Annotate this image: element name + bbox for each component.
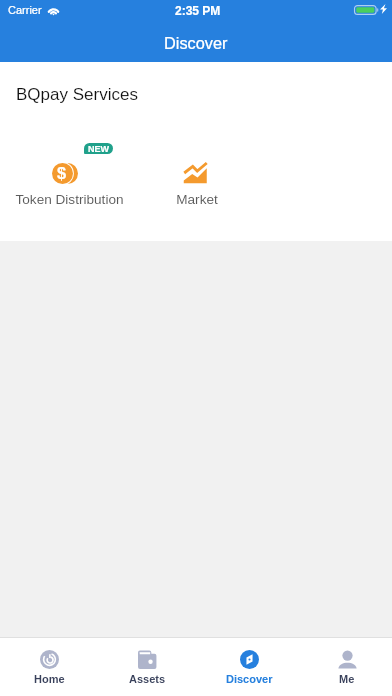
staticText: Discover bbox=[226, 673, 273, 685]
button[interactable]: Me bbox=[302, 638, 392, 696]
staticText: Discover bbox=[164, 34, 228, 52]
staticText: Token Distribution bbox=[15, 192, 124, 207]
staticText: 2:35 PM bbox=[175, 4, 221, 17]
button[interactable]: Discover bbox=[196, 638, 302, 696]
button[interactable]: Home bbox=[0, 638, 98, 696]
button[interactable]: $ bbox=[5, 162, 133, 207]
staticText: Carrier bbox=[8, 4, 42, 16]
staticText: BQpay Services bbox=[16, 85, 138, 104]
button[interactable]: Assets bbox=[98, 638, 196, 696]
staticText: Home bbox=[34, 673, 65, 685]
button[interactable]: Market bbox=[133, 162, 261, 207]
staticText: Market bbox=[176, 192, 218, 207]
staticText: NEW bbox=[88, 144, 109, 154]
staticText: $ bbox=[57, 164, 67, 182]
staticText: Me bbox=[339, 673, 355, 685]
staticText: Assets bbox=[129, 673, 166, 685]
